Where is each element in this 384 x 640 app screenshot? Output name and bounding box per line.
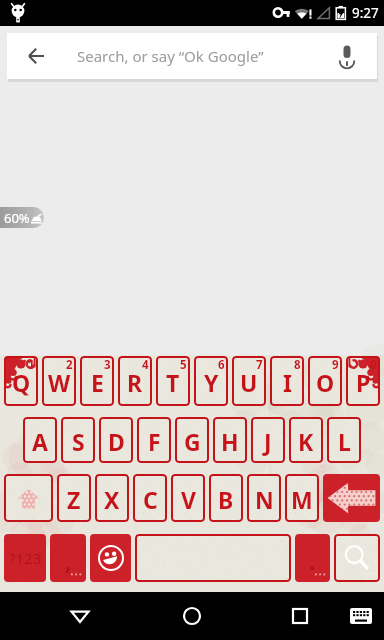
button[interactable]: K bbox=[289, 417, 323, 463]
button[interactable]: P bbox=[346, 356, 380, 406]
staticText: K bbox=[298, 426, 314, 457]
button[interactable]: Search bbox=[334, 534, 380, 582]
button[interactable]: S bbox=[61, 417, 95, 463]
staticText: 8 bbox=[294, 357, 301, 373]
staticText: G bbox=[184, 426, 201, 457]
button[interactable]: E bbox=[80, 356, 114, 406]
staticText: S bbox=[72, 426, 85, 457]
staticText: 5 bbox=[180, 357, 187, 373]
button[interactable]: F bbox=[137, 417, 171, 463]
staticText: J bbox=[264, 426, 272, 457]
staticText: M bbox=[291, 484, 313, 515]
button[interactable]: N bbox=[247, 474, 281, 522]
button[interactable]: Shift bbox=[4, 474, 53, 522]
staticText: 9 bbox=[332, 357, 339, 373]
staticText: O bbox=[316, 367, 335, 398]
button[interactable]: Z bbox=[57, 474, 91, 522]
button[interactable] bbox=[135, 534, 291, 582]
button[interactable]: 60% bbox=[0, 207, 44, 228]
button[interactable]: Switch keyboard bbox=[344, 599, 378, 633]
button[interactable]: B bbox=[209, 474, 243, 522]
staticText: B bbox=[218, 484, 234, 515]
button[interactable]: R bbox=[118, 356, 152, 406]
button[interactable]: Emoji bbox=[90, 534, 131, 582]
staticText: N bbox=[255, 484, 274, 515]
button[interactable]: X bbox=[95, 474, 129, 522]
other: Search bbox=[343, 544, 371, 572]
staticText: 0 bbox=[370, 357, 377, 373]
other: Shift bbox=[16, 486, 41, 511]
button[interactable]: ?123 bbox=[4, 534, 46, 582]
button[interactable]: M bbox=[285, 474, 319, 522]
button[interactable]: Back bbox=[60, 596, 100, 636]
staticText: , bbox=[65, 545, 72, 576]
staticText: 60% bbox=[4, 209, 30, 227]
staticText: U bbox=[240, 367, 258, 398]
staticText: P bbox=[356, 367, 371, 398]
button[interactable]: O bbox=[308, 356, 342, 406]
button[interactable]: W bbox=[42, 356, 76, 406]
staticText: Q bbox=[12, 367, 31, 398]
button[interactable]: U bbox=[232, 356, 266, 406]
staticText: L bbox=[338, 426, 351, 457]
button[interactable]: Recents bbox=[280, 596, 320, 636]
button[interactable]: Delete bbox=[323, 474, 380, 522]
staticText: 4 bbox=[142, 357, 149, 373]
button[interactable]: . bbox=[295, 534, 330, 582]
staticText: ?123 bbox=[9, 548, 42, 568]
staticText: 1 bbox=[28, 357, 35, 373]
other: Delete bbox=[323, 474, 380, 522]
button[interactable]: G bbox=[175, 417, 209, 463]
other: Downloading bbox=[31, 213, 42, 224]
staticText: T bbox=[166, 367, 180, 398]
staticText: C bbox=[143, 484, 158, 515]
staticText: 2 bbox=[66, 357, 73, 373]
button[interactable]: D bbox=[99, 417, 133, 463]
button[interactable]: Home bbox=[172, 596, 212, 636]
staticText: R bbox=[127, 367, 143, 398]
staticText: . bbox=[309, 545, 316, 576]
button[interactable]: T bbox=[156, 356, 190, 406]
staticText: 9:27 bbox=[352, 4, 379, 22]
button[interactable]: C bbox=[133, 474, 167, 522]
staticText: Search, or say “Ok Google” bbox=[77, 46, 264, 66]
button[interactable]: , bbox=[50, 534, 86, 582]
staticText: 3 bbox=[104, 357, 111, 373]
staticText: Y bbox=[204, 367, 219, 398]
staticText: X bbox=[104, 484, 120, 515]
button[interactable]: Back bbox=[7, 33, 377, 79]
button[interactable]: V bbox=[171, 474, 205, 522]
button[interactable]: H bbox=[213, 417, 247, 463]
staticText: V bbox=[181, 484, 196, 515]
staticText: 7 bbox=[256, 357, 263, 373]
other: Voice search bbox=[334, 43, 360, 69]
button[interactable]: I bbox=[270, 356, 304, 406]
staticText: 6 bbox=[218, 357, 225, 373]
button[interactable]: L bbox=[327, 417, 361, 463]
other: Back bbox=[28, 46, 48, 66]
button[interactable]: Q bbox=[4, 356, 38, 406]
button[interactable]: A bbox=[23, 417, 57, 463]
other: Emoji bbox=[96, 543, 126, 573]
button[interactable]: Y bbox=[194, 356, 228, 406]
staticText: E bbox=[91, 367, 104, 398]
staticText: W bbox=[48, 367, 71, 398]
staticText: F bbox=[148, 426, 161, 457]
staticText: I bbox=[283, 367, 292, 398]
staticText: Z bbox=[67, 484, 81, 515]
staticText: D bbox=[108, 426, 125, 457]
button[interactable]: J bbox=[251, 417, 285, 463]
staticText: H bbox=[221, 426, 239, 457]
staticText: A bbox=[32, 426, 48, 457]
